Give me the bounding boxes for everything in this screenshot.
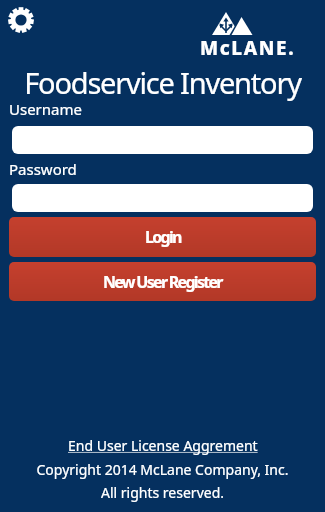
button[interactable]: End User License Aggrement [68,436,258,455]
staticText: Foodservice Inventory [0,63,325,102]
staticText: All rights reserved. [0,483,325,502]
button[interactable]: New User Register [9,262,316,301]
staticText: Username [9,99,82,119]
staticText: New User Register [103,271,222,293]
button[interactable] [8,7,34,33]
staticText: Copyright 2014 McLane Company, Inc. [0,460,325,479]
staticText: Password [9,159,77,179]
button[interactable] [12,126,313,154]
staticText: Login [145,226,181,248]
staticText: McLANE. [200,35,296,56]
button[interactable] [12,184,313,212]
button[interactable]: Login [9,217,316,257]
